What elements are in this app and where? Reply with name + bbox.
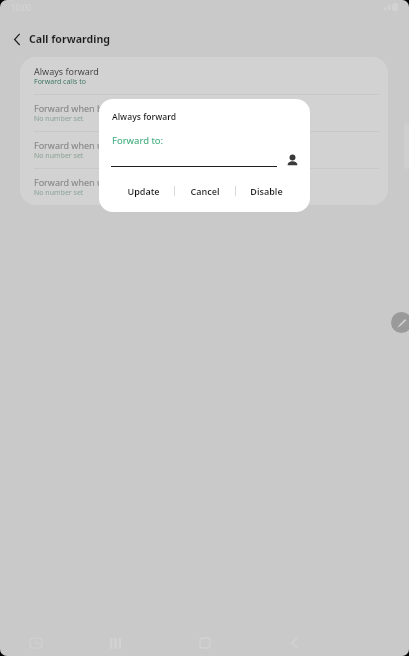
staticText: No number set: [34, 151, 84, 161]
button[interactable]: Cancel: [175, 181, 235, 201]
staticText: No number set: [34, 114, 84, 124]
button[interactable]: Forward when unreachable: [20, 168, 388, 205]
staticText: Forward when busy: [34, 102, 117, 114]
button[interactable]: Update: [113, 181, 174, 201]
staticText: Disable: [250, 185, 283, 197]
staticText: Forward to:: [112, 134, 164, 147]
staticText: 10:00: [11, 2, 32, 13]
staticText: Always forward: [112, 111, 177, 123]
staticText: No number set: [34, 188, 84, 198]
button[interactable]: Forward when unanswered: [20, 131, 388, 168]
button[interactable]: Disable: [236, 181, 296, 201]
staticText: Forward when unanswered: [34, 139, 150, 151]
staticText: Always forward: [34, 65, 99, 77]
staticText: Call forwarding: [29, 32, 111, 46]
staticText: Forward when unreachable: [34, 176, 150, 188]
button[interactable]: Navigate up: [7, 29, 27, 49]
button[interactable]: Edit: [391, 312, 409, 333]
staticText: Cancel: [190, 185, 220, 197]
staticText: Forward calls to: [34, 77, 86, 87]
staticText: Update: [127, 185, 160, 197]
button[interactable]: Always forward: [20, 57, 388, 94]
button[interactable]: Choose contact: [283, 151, 301, 169]
button[interactable]: Forward when busy: [20, 94, 388, 131]
